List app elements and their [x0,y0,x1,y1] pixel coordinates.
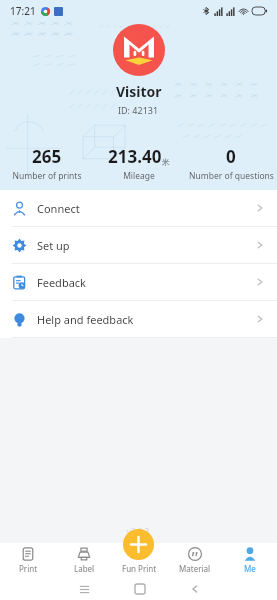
staticText: Connect [37,201,80,216]
button[interactable]: Material [167,543,222,578]
staticText: Material [179,563,211,574]
staticText: Label [74,563,95,574]
staticText: Feedback [37,275,86,290]
button[interactable]: Connect [0,190,277,226]
staticText: Visitor [116,82,162,101]
button[interactable]: Feedback [0,264,277,300]
staticText: Help and feedback [37,312,134,327]
button[interactable]: Help and feedback [0,301,277,337]
staticText: 米 [162,157,170,167]
staticText: Set up [37,238,70,253]
staticText: Mileage [123,170,155,182]
button[interactable]: Set up [0,227,277,263]
button[interactable]: Me [222,543,277,578]
staticText: 17:21 [10,4,36,18]
staticText: Print [19,563,38,574]
button[interactable]: Print [0,543,56,578]
staticText: v2.1.3 [127,526,150,537]
staticText: 0 [226,145,236,168]
staticText: ID: 42131 [118,104,159,116]
staticText: Fun Print [122,563,157,574]
staticText: 265 [32,145,62,168]
staticText: Me [244,563,256,574]
other: Profile avatar [113,24,165,76]
staticText: 213.40 [108,145,162,168]
button[interactable]: Fun Print, add [123,529,154,560]
staticText: Number of prints [12,170,82,182]
button[interactable]: Fun Print [112,543,167,578]
staticText: Number of questions [189,170,274,182]
button[interactable]: Label [56,543,112,578]
